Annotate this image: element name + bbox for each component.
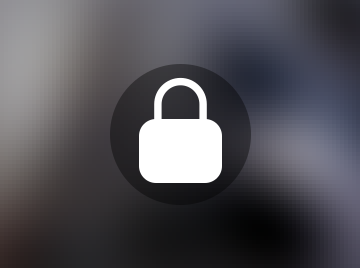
button[interactable]: Unlock	[0, 0, 360, 268]
